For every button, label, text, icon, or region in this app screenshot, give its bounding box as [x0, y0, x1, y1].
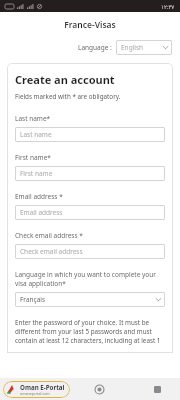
button[interactable]: Email address — [15, 205, 165, 220]
staticText: Fields marked with * are obligatory. — [15, 92, 121, 101]
staticText: France-Visas — [0, 19, 180, 31]
staticText: Oman E-Portal — [20, 383, 65, 391]
staticText: Email address — [20, 208, 63, 217]
button[interactable]: Recent apps — [150, 382, 164, 396]
staticText: omanepcrtal.com — [20, 391, 50, 396]
button[interactable]: Oman E-Portal — [3, 381, 70, 398]
staticText: Language : — [78, 43, 112, 52]
button[interactable]: English — [116, 40, 172, 55]
staticText: First name — [20, 169, 53, 178]
staticText: English — [121, 43, 144, 52]
staticText: ١٢:٣٧ — [161, 3, 175, 10]
staticText: Create an account — [15, 72, 115, 87]
button[interactable]: Check email address — [15, 244, 165, 259]
button[interactable]: First name — [15, 166, 165, 181]
staticText: Email address * — [15, 192, 63, 201]
staticText: Enter the password of your choice. It mu… — [15, 318, 165, 345]
staticText: First name* — [15, 153, 51, 162]
staticText: Check email address — [20, 247, 83, 256]
staticText: Last name — [20, 130, 52, 139]
staticText: Last name* — [15, 114, 51, 123]
staticText: Check email address * — [15, 231, 83, 240]
staticText: Language in which you want to complete y… — [15, 270, 165, 288]
staticText: Français — [20, 295, 46, 304]
button[interactable]: Last name — [15, 127, 165, 142]
button[interactable]: Français — [15, 292, 165, 307]
button[interactable]: Home — [92, 382, 106, 396]
